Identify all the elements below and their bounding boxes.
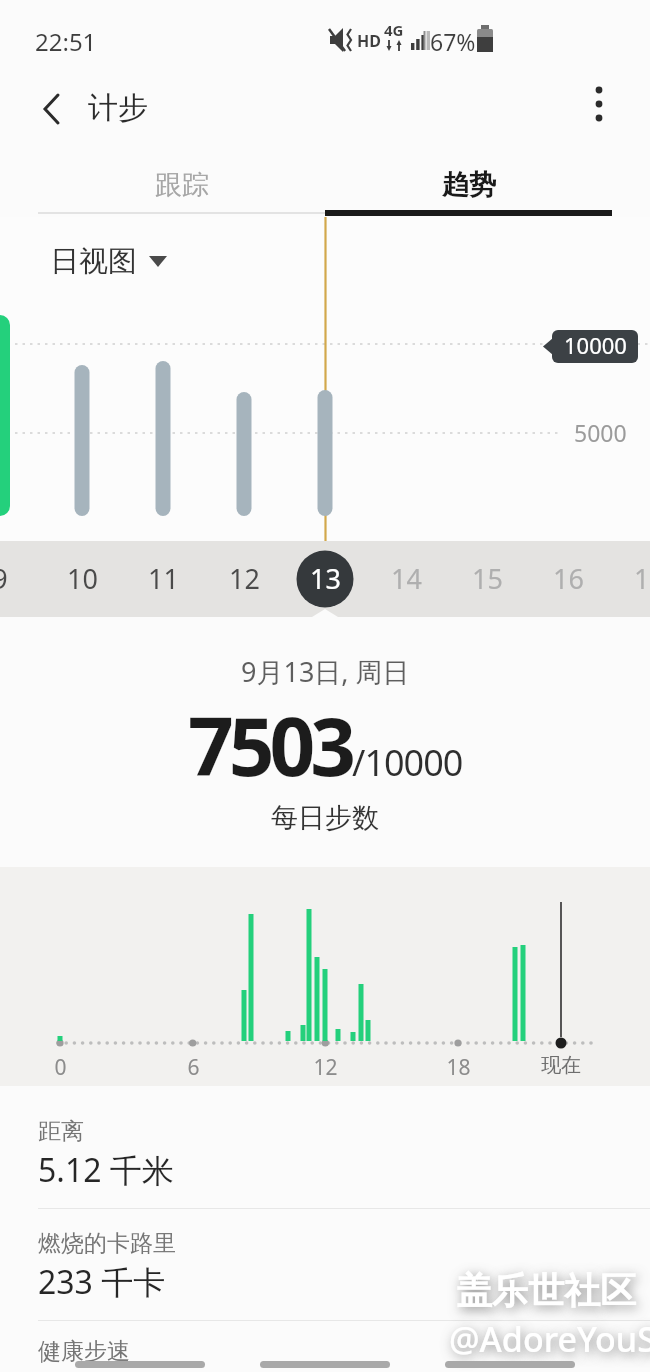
staticText: 67%	[430, 26, 476, 57]
staticText: 每日步数	[271, 801, 379, 835]
staticText: 12	[313, 1053, 338, 1082]
button[interactable]: 14	[376, 560, 436, 597]
staticText: 233 千卡	[38, 1260, 166, 1304]
button[interactable]: 17	[619, 560, 650, 597]
staticText: 16	[553, 560, 584, 597]
button[interactable]: 9	[0, 560, 30, 597]
staticText: 7503	[188, 690, 352, 799]
staticText: HD	[357, 30, 381, 52]
staticText: 5000	[574, 417, 627, 448]
staticText: 14	[391, 560, 422, 597]
staticText: 计步	[88, 89, 148, 127]
staticText: 15	[472, 560, 503, 597]
staticText: 盖乐世社区	[456, 1268, 636, 1313]
button[interactable]: 趋势	[325, 160, 612, 210]
staticText: 健康步速	[38, 1337, 130, 1366]
staticText: 0	[54, 1053, 67, 1082]
button[interactable]: 15	[457, 560, 517, 597]
button[interactable]: 跟踪	[38, 160, 325, 210]
button[interactable]	[28, 83, 76, 131]
staticText: 距离	[38, 1117, 84, 1146]
button[interactable]	[575, 81, 623, 129]
staticText: 22:51	[35, 25, 97, 58]
staticText: 13	[310, 560, 341, 597]
staticText: /10000	[352, 738, 463, 787]
button[interactable]: 燃烧的卡路里	[0, 1209, 650, 1321]
button[interactable]: 16	[538, 560, 598, 597]
button[interactable]: 10	[52, 560, 112, 597]
staticText: 11	[148, 560, 179, 597]
staticText: 9月13日, 周日	[241, 653, 410, 690]
staticText: 趋势	[442, 168, 496, 202]
staticText: 10	[67, 560, 98, 597]
button[interactable]: 12	[214, 560, 274, 597]
staticText: 12	[229, 560, 260, 597]
staticText: 日视图	[50, 243, 137, 280]
staticText: 9	[0, 560, 8, 597]
staticText: 6	[187, 1053, 200, 1082]
staticText: 4G	[384, 20, 404, 40]
staticText: 17	[634, 560, 650, 597]
button[interactable]: 日视图	[50, 243, 167, 280]
staticText: 跟踪	[155, 168, 209, 202]
button[interactable]: 健康步速	[0, 1321, 650, 1366]
staticText: @AdoreYouS	[449, 1316, 650, 1362]
staticText: 燃烧的卡路里	[38, 1229, 176, 1258]
button[interactable]: 距离	[0, 1086, 650, 1209]
staticText: 现在	[541, 1053, 581, 1078]
staticText: 18	[446, 1053, 471, 1082]
staticText: 10000	[564, 330, 627, 360]
button[interactable]: 13	[295, 560, 355, 597]
staticText: 5.12 千米	[38, 1148, 174, 1192]
button[interactable]: 11	[133, 560, 193, 597]
